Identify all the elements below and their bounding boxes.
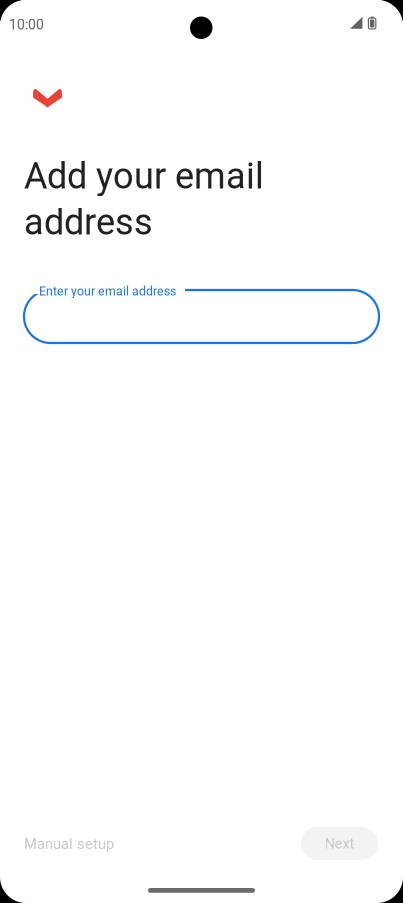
staticText: Next xyxy=(324,835,354,852)
staticText: 10:00 xyxy=(9,17,44,33)
button[interactable]: Manual setup xyxy=(24,826,136,862)
staticText: Enter your email address xyxy=(39,284,176,298)
button[interactable]: Next xyxy=(301,827,378,860)
staticText: address xyxy=(24,201,153,243)
staticText: Add your email xyxy=(24,155,264,197)
staticText: Manual setup xyxy=(24,835,114,853)
